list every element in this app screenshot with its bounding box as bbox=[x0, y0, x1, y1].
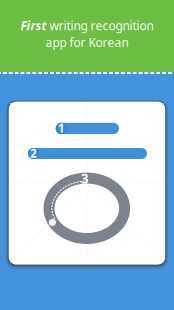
staticText: 3 bbox=[81, 170, 89, 187]
staticText: 2 bbox=[30, 145, 37, 161]
staticText: First writing recognition bbox=[20, 18, 153, 33]
staticText: app for Korean bbox=[45, 34, 128, 50]
staticText: 1 bbox=[58, 120, 65, 136]
